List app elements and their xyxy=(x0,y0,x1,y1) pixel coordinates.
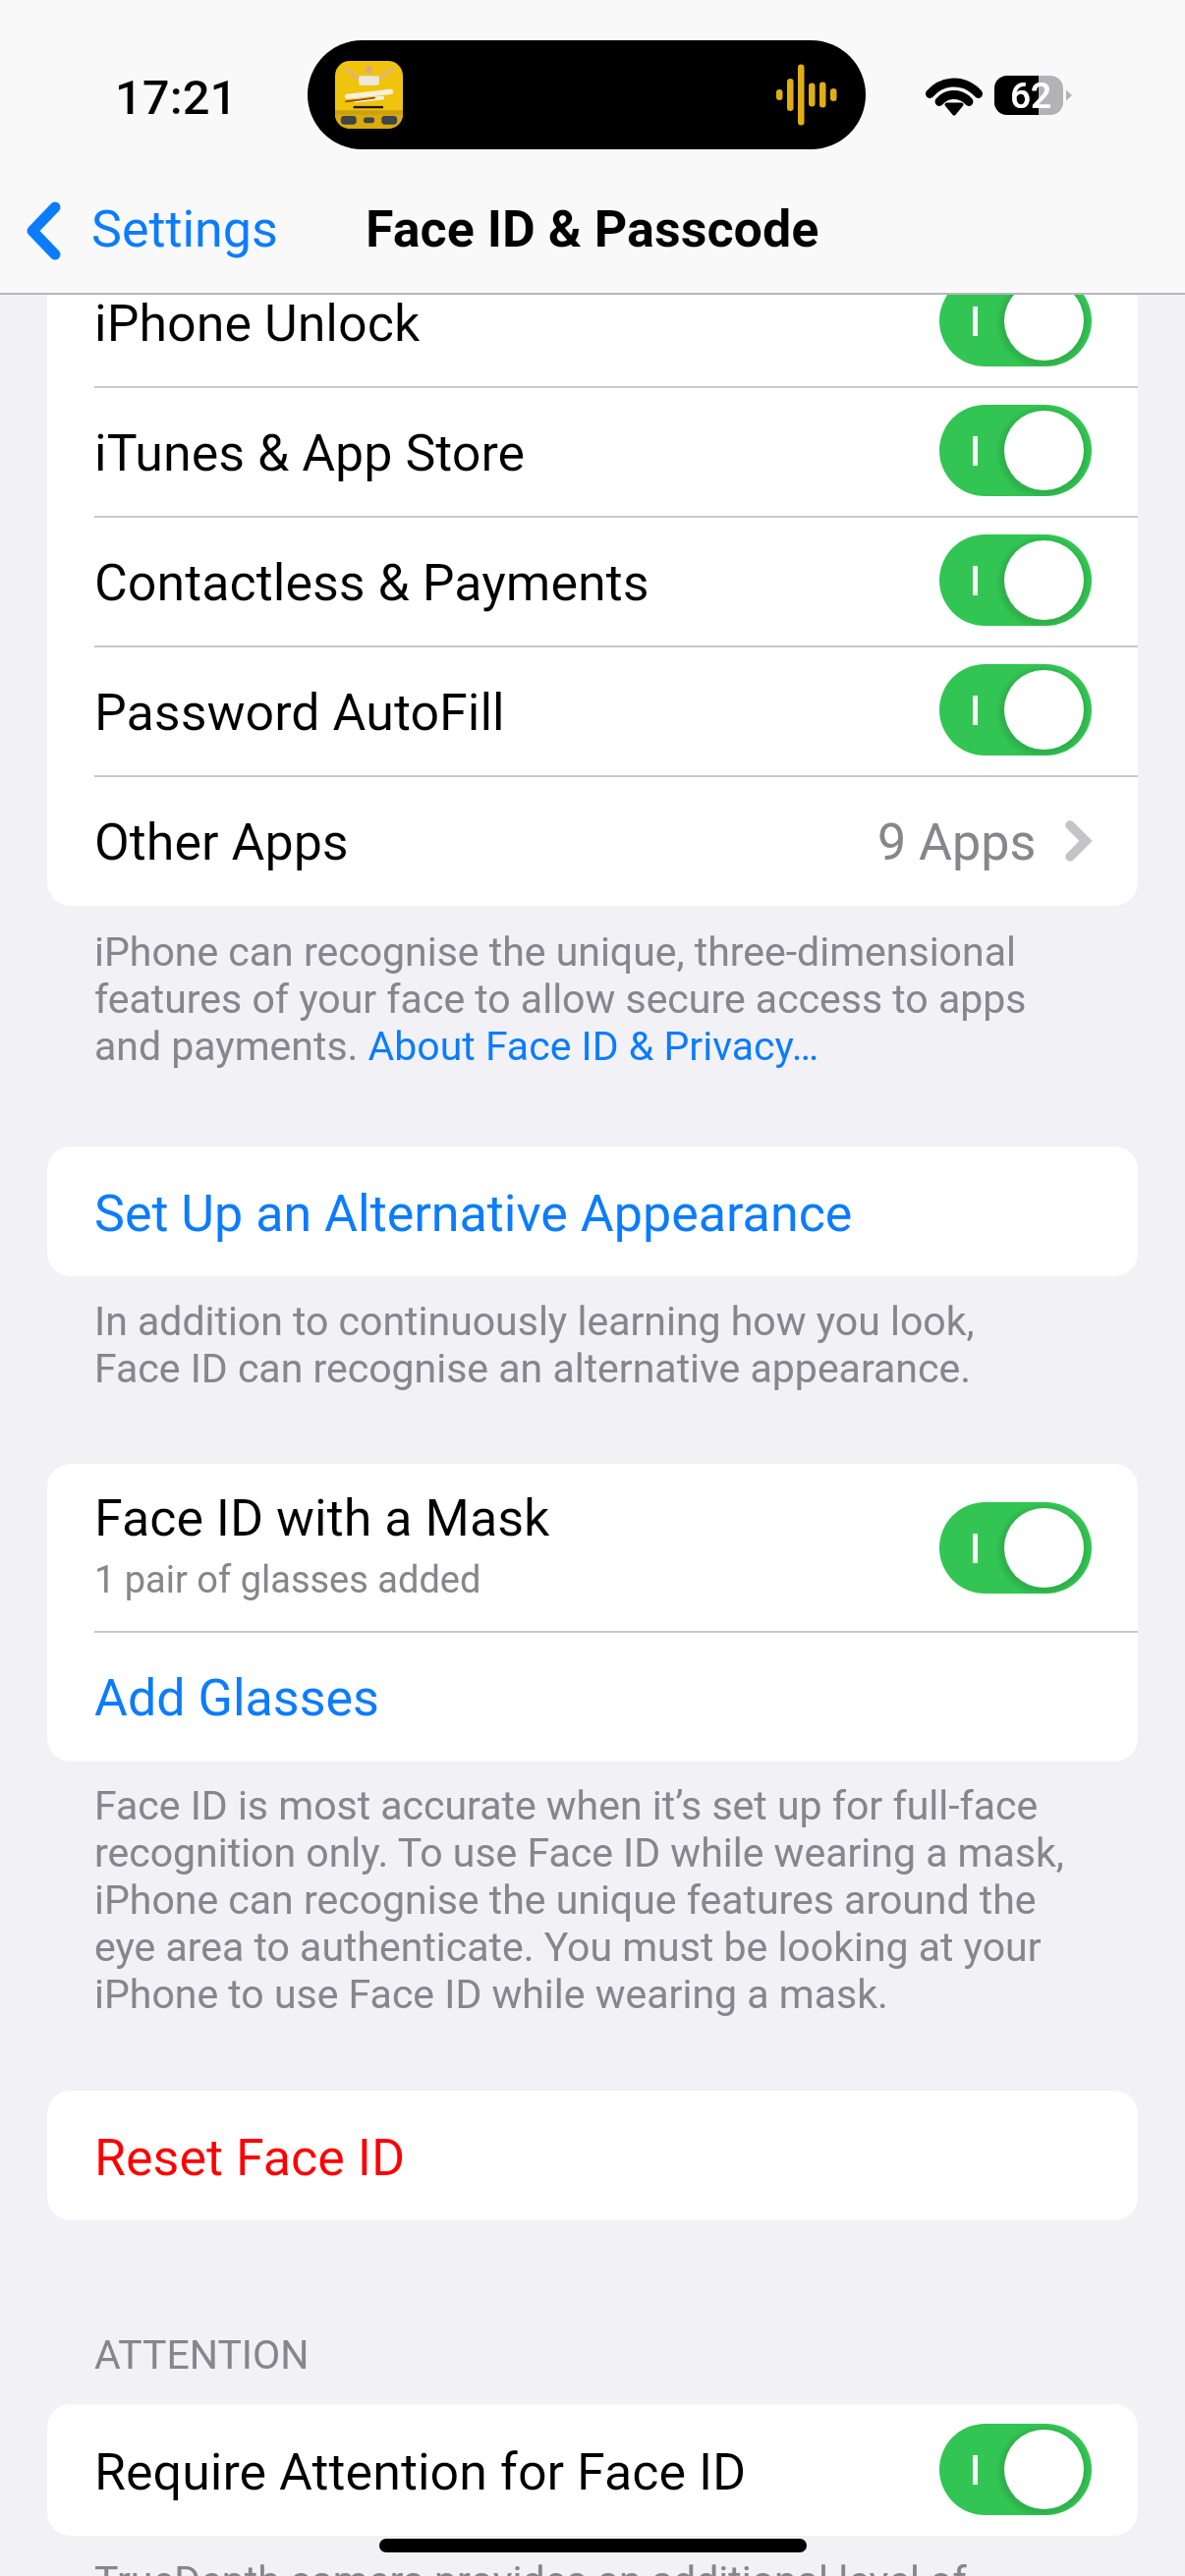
button[interactable]: Toggle switch, on xyxy=(939,1502,1092,1594)
staticText: Face ID is most accurate when it’s set u… xyxy=(94,1782,1087,2018)
button[interactable] xyxy=(47,1631,1138,1762)
button[interactable] xyxy=(47,775,1138,906)
staticText: iPhone can recognise the unique, three-d… xyxy=(94,928,1087,1070)
staticText: Other Apps xyxy=(94,812,349,872)
button[interactable]: Toggle switch, on xyxy=(939,405,1092,496)
other: Battery 62 percent xyxy=(994,76,1072,115)
button[interactable]: Toggle switch, on xyxy=(939,664,1092,756)
button[interactable] xyxy=(47,2404,1138,2536)
button[interactable]: Toggle switch, on xyxy=(939,275,1092,366)
button[interactable] xyxy=(47,386,1138,516)
staticText: 9 Apps xyxy=(877,812,1037,872)
staticText: iPhone Unlock xyxy=(94,294,421,354)
staticText: iTunes & App Store xyxy=(94,423,526,483)
staticText: Contactless & Payments xyxy=(94,553,649,613)
staticText: Face ID with a Mask xyxy=(94,1488,550,1548)
button[interactable] xyxy=(47,516,1138,645)
staticText: Set Up an Alternative Appearance xyxy=(94,1184,853,1244)
button[interactable] xyxy=(47,645,1138,775)
staticText: Face ID & Passcode xyxy=(366,199,819,259)
staticText: 1 pair of glasses added xyxy=(94,1558,481,1602)
staticText: ATTENTION xyxy=(94,2331,310,2379)
staticText: Add Glasses xyxy=(94,1668,379,1728)
staticText: Settings xyxy=(91,199,278,259)
other: Wi-Fi xyxy=(931,77,978,114)
button[interactable] xyxy=(47,1147,1138,1276)
staticText: TrueDepth camera provides an additional … xyxy=(94,2557,1038,2576)
button[interactable]: Toggle switch, on xyxy=(939,534,1092,626)
staticText: Reset Face ID xyxy=(94,2128,406,2188)
staticText: 62 xyxy=(1010,75,1052,114)
staticText: In addition to continuously learning how… xyxy=(94,1298,1028,1392)
button[interactable]: Back to Settings xyxy=(12,180,289,282)
button[interactable]: Toggle switch, on xyxy=(939,2424,1092,2515)
button[interactable] xyxy=(47,2091,1138,2220)
staticText: 17:21 xyxy=(115,70,238,126)
staticText: Password AutoFill xyxy=(94,683,505,743)
button[interactable] xyxy=(47,1464,1138,1631)
button[interactable]: About Face ID & Privacy xyxy=(367,1024,819,1071)
button[interactable] xyxy=(47,256,1138,386)
staticText: Require Attention for Face ID xyxy=(94,2442,747,2502)
